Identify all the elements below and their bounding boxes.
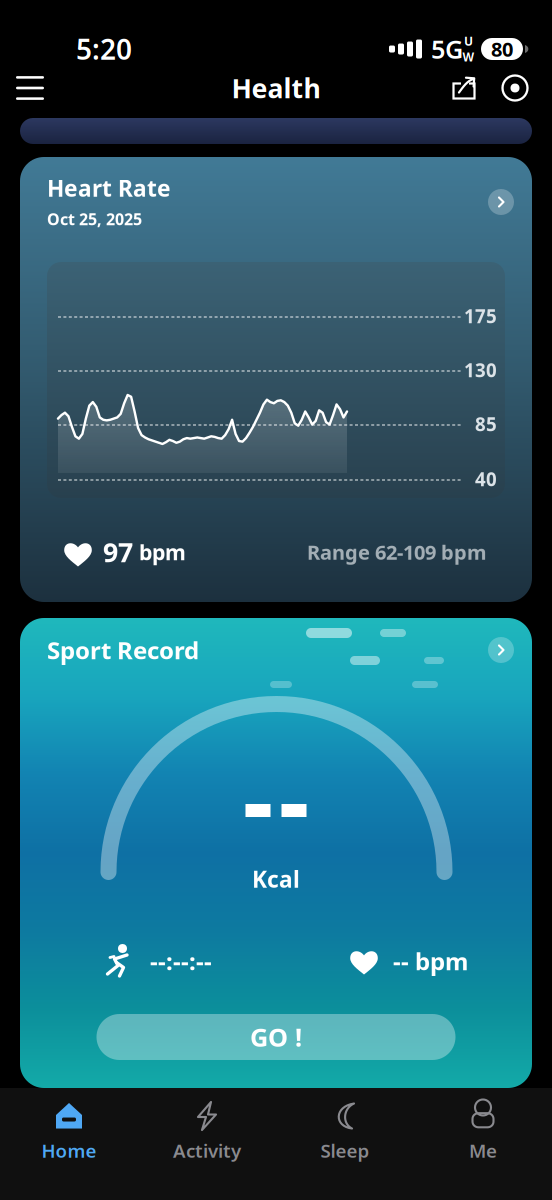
button[interactable]: Me: [414, 1088, 552, 1200]
button[interactable]: Open details: [483, 184, 519, 220]
staticText: Range 62-109 bpm: [307, 539, 487, 565]
staticText: 175: [464, 304, 497, 328]
button[interactable]: Share: [439, 62, 489, 114]
button[interactable]: Menu: [0, 62, 60, 114]
staticText: GO !: [250, 1020, 302, 1054]
staticText: 5G: [431, 32, 463, 66]
staticText: Kcal: [252, 864, 300, 894]
staticText: Sport Record: [47, 634, 199, 666]
staticText: 80: [491, 36, 513, 62]
staticText: 40: [475, 467, 497, 491]
staticText: Sleep: [320, 1138, 369, 1163]
staticText: Health: [231, 70, 320, 106]
staticText: 5:20: [76, 30, 132, 68]
button[interactable]: Scan: [489, 62, 541, 114]
staticText: W: [462, 49, 474, 65]
staticText: Home: [41, 1138, 96, 1163]
staticText: bpm: [139, 538, 186, 566]
button[interactable]: Activity: [138, 1088, 276, 1200]
button[interactable]: Home: [0, 1088, 138, 1200]
staticText: Activity: [173, 1138, 241, 1163]
staticText: --:--:--: [150, 945, 212, 977]
button[interactable]: GO !: [96, 1014, 455, 1060]
button[interactable]: Open details: [483, 632, 519, 668]
staticText: -- bpm: [393, 945, 468, 977]
staticText: Oct 25, 2025: [47, 208, 142, 230]
button[interactable]: Sleep: [276, 1088, 414, 1200]
staticText: 85: [475, 412, 497, 436]
staticText: U: [464, 33, 473, 49]
staticText: 130: [464, 358, 497, 382]
staticText: Heart Rate: [47, 173, 171, 203]
staticText: 97: [103, 534, 133, 570]
staticText: Me: [469, 1138, 497, 1163]
